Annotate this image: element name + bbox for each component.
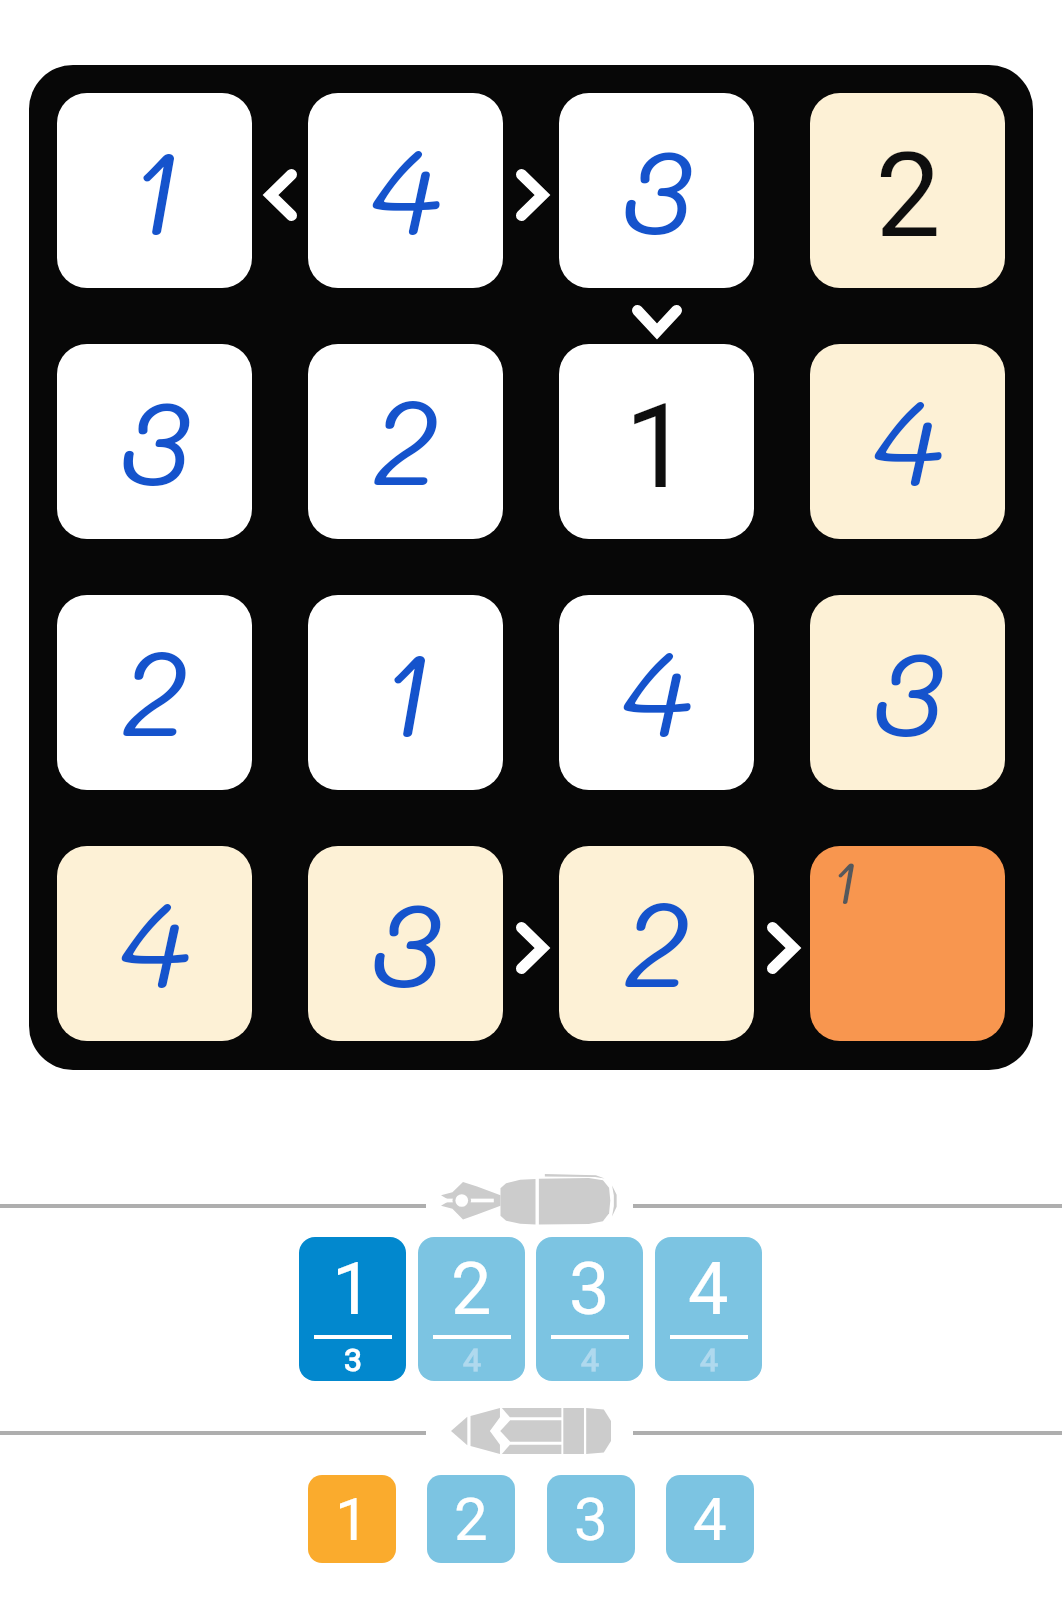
button[interactable]: 4 <box>559 595 754 790</box>
button[interactable]: 1 <box>559 344 754 539</box>
button[interactable]: 3 <box>810 595 1005 790</box>
staticText: 4 <box>700 1341 718 1379</box>
button[interactable]: 1 <box>308 1475 396 1563</box>
button[interactable]: 1 <box>810 846 1005 1041</box>
staticText: 3 <box>370 862 441 1018</box>
button[interactable]: 2 <box>418 1237 525 1381</box>
staticText: 4 <box>370 109 441 265</box>
button[interactable]: 2 <box>559 846 754 1041</box>
staticText: 1 <box>128 109 182 265</box>
button[interactable]: 4 <box>655 1237 762 1381</box>
staticText: 4 <box>688 1247 729 1331</box>
button[interactable]: 3 <box>308 846 503 1041</box>
other: Pencil mode <box>451 1408 611 1454</box>
button[interactable]: 4 <box>308 93 503 288</box>
button[interactable]: 1 <box>57 93 252 288</box>
button[interactable]: 2 <box>427 1475 515 1563</box>
staticText: 3 <box>119 360 190 516</box>
staticText: 3 <box>569 1247 610 1331</box>
button[interactable]: 1 <box>308 595 503 790</box>
staticText: 3 <box>574 1484 608 1554</box>
staticText: 1 <box>624 379 690 515</box>
staticText: 1 <box>831 846 858 919</box>
button[interactable]: 2 <box>810 93 1005 288</box>
staticText: 3 <box>621 109 692 265</box>
button[interactable]: 1 <box>299 1237 406 1381</box>
staticText: 2 <box>454 1484 488 1554</box>
staticText: 1 <box>379 611 433 767</box>
button[interactable]: 2 <box>57 595 252 790</box>
staticText: 4 <box>872 360 943 516</box>
other: Pen mode <box>441 1174 617 1227</box>
staticText: 4 <box>621 611 692 767</box>
staticText: 3 <box>872 611 943 767</box>
staticText: 2 <box>623 862 690 1018</box>
staticText: 2 <box>451 1247 492 1331</box>
staticText: 3 <box>344 1341 362 1379</box>
button[interactable]: 3 <box>547 1475 635 1563</box>
staticText: 4 <box>693 1484 727 1554</box>
staticText: 2 <box>121 611 188 767</box>
staticText: 4 <box>581 1341 599 1379</box>
staticText: 2 <box>372 360 439 516</box>
button[interactable]: 4 <box>666 1475 754 1563</box>
button[interactable]: 3 <box>559 93 754 288</box>
button[interactable]: 4 <box>57 846 252 1041</box>
staticText: 1 <box>332 1247 373 1331</box>
button[interactable]: 3 <box>57 344 252 539</box>
staticText: 2 <box>875 128 941 264</box>
button[interactable]: 3 <box>536 1237 643 1381</box>
button[interactable]: 2 <box>308 344 503 539</box>
staticText: 1 <box>335 1484 369 1554</box>
staticText: 4 <box>463 1341 481 1379</box>
staticText: 4 <box>119 862 190 1018</box>
button[interactable]: 4 <box>810 344 1005 539</box>
